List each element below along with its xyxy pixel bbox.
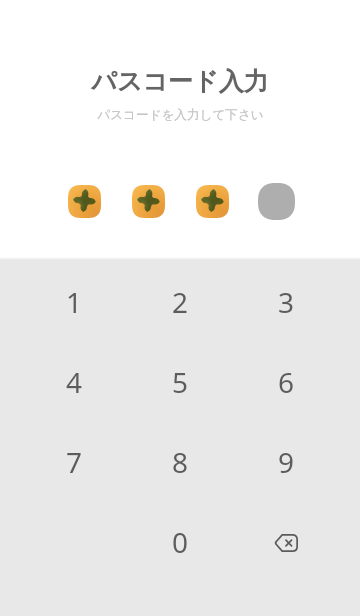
staticText: パスコードを入力して下さい bbox=[97, 107, 264, 123]
staticText: 5 bbox=[172, 363, 189, 401]
staticText: パスコード入力 bbox=[91, 66, 269, 97]
staticText: 1 bbox=[66, 283, 83, 321]
button[interactable]: 8 bbox=[127, 422, 233, 502]
staticText: 7 bbox=[66, 443, 83, 481]
staticText: 9 bbox=[278, 443, 295, 481]
staticText: 0 bbox=[172, 523, 189, 561]
button[interactable]: 1 bbox=[21, 262, 127, 342]
staticText: 3 bbox=[278, 283, 295, 321]
button[interactable]: 6 bbox=[233, 342, 339, 422]
button[interactable]: 2 bbox=[127, 262, 233, 342]
button[interactable]: 9 bbox=[233, 422, 339, 502]
staticText: 4 bbox=[66, 363, 83, 401]
button[interactable]: 0 bbox=[127, 502, 233, 582]
button[interactable]: 3 bbox=[233, 262, 339, 342]
button[interactable]: 4 bbox=[21, 342, 127, 422]
button[interactable]: 5 bbox=[127, 342, 233, 422]
staticText: 6 bbox=[278, 363, 295, 401]
button[interactable]: Delete bbox=[233, 502, 339, 582]
staticText: 2 bbox=[172, 283, 189, 321]
staticText: 8 bbox=[172, 443, 189, 481]
button[interactable]: 7 bbox=[21, 422, 127, 502]
